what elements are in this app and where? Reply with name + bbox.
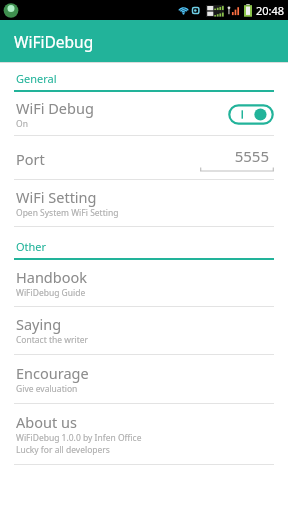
button[interactable]: WiFi Setting: [0, 180, 288, 226]
staticText: Encourage: [16, 363, 89, 383]
staticText: Give evaluation: [16, 383, 78, 395]
staticText: 20:48: [256, 3, 285, 18]
staticText: Saying: [16, 314, 62, 334]
button[interactable]: About us: [0, 404, 288, 464]
staticText: Port: [16, 149, 45, 169]
staticText: WiFiDebug 1.0.0 by Infen Office: [16, 432, 142, 444]
staticText: Open System WiFi Setting: [16, 207, 119, 219]
button[interactable]: Handbook: [0, 260, 288, 306]
button[interactable]: Port: [0, 136, 288, 179]
staticText: 5555: [200, 146, 269, 166]
staticText: On: [16, 118, 28, 130]
staticText: WiFiDebug Guide: [16, 287, 86, 299]
staticText: General: [16, 71, 57, 86]
button[interactable]: Encourage: [0, 355, 288, 403]
button[interactable]: 5555: [200, 146, 274, 172]
button[interactable]: WiFi Debug: [0, 92, 288, 135]
staticText: WiFi Debug: [16, 98, 94, 118]
button[interactable]: WiFi Debug toggle: [228, 104, 274, 125]
button[interactable]: Saying: [0, 307, 288, 354]
staticText: WiFiDebug: [14, 31, 94, 52]
staticText: Handbook: [16, 267, 87, 287]
staticText: Lucky for all developers: [16, 444, 110, 456]
staticText: WiFi Setting: [16, 187, 97, 207]
staticText: About us: [16, 412, 77, 432]
staticText: Other: [16, 239, 47, 254]
staticText: Contact the writer: [16, 334, 89, 346]
